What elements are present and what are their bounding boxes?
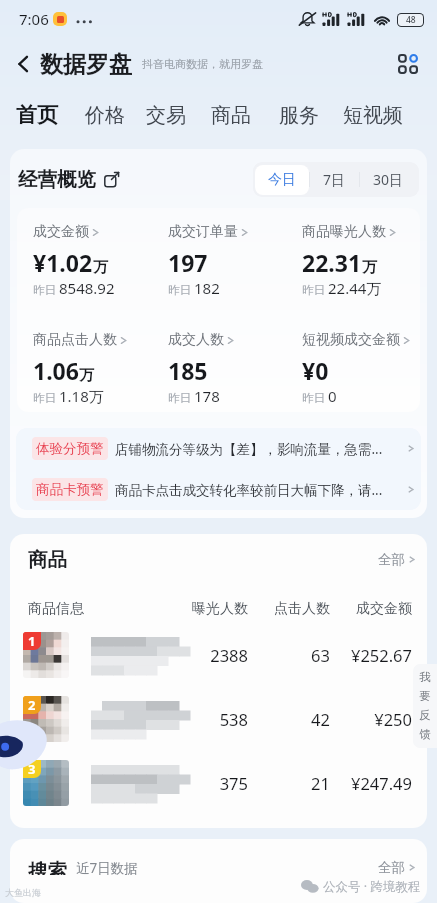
staticText: 交易 xyxy=(146,103,186,128)
staticText: 8548.92 xyxy=(59,278,115,298)
button[interactable]: 交易 xyxy=(146,103,186,136)
staticText: 大鱼出海 xyxy=(5,887,41,898)
button[interactable]: 7日 xyxy=(310,164,359,195)
staticText: 万 xyxy=(79,366,94,385)
button[interactable]: 服务 xyxy=(279,103,319,136)
staticText: ¥247.49 xyxy=(330,772,412,794)
staticText: 成交金额 xyxy=(33,223,89,241)
staticText: ¥252.67 xyxy=(330,644,412,666)
button[interactable]: 30日 xyxy=(360,164,417,195)
button[interactable]: 我 要 反 馈 xyxy=(413,664,437,748)
staticText: 63 xyxy=(248,644,330,666)
staticText: 3 xyxy=(28,760,36,778)
button[interactable]: 体验分预警 xyxy=(16,428,421,469)
staticText: 1 xyxy=(28,632,36,650)
button[interactable]: 全部 xyxy=(378,859,415,875)
button[interactable]: 商品点击人数 xyxy=(17,331,152,406)
staticText: 21 xyxy=(248,772,330,794)
staticText: 成交人数 xyxy=(168,331,224,349)
staticText: 7日 xyxy=(323,170,346,189)
staticText: 商品卡预警 xyxy=(36,481,104,498)
staticText: 万 xyxy=(93,258,108,277)
staticText: 体验分预警 xyxy=(36,440,104,457)
staticText: 数据罗盘 xyxy=(40,50,132,79)
staticText: 538 xyxy=(186,708,248,730)
staticText: 197 xyxy=(168,247,208,278)
staticText: 近7日数据 xyxy=(76,859,138,875)
button[interactable]: 2 xyxy=(10,687,427,751)
staticText: 昨日 xyxy=(33,391,56,405)
staticText: 首页 xyxy=(16,102,58,128)
button[interactable]: 价格 xyxy=(85,103,125,136)
staticText: 1.06 xyxy=(33,355,79,386)
staticText: 我 要 反 馈 xyxy=(419,670,431,742)
staticText: 2388 xyxy=(186,644,248,666)
staticText: 22.31 xyxy=(302,247,362,278)
staticText: 万 xyxy=(362,258,377,277)
staticText: 今日 xyxy=(268,171,296,189)
staticText: 375 xyxy=(186,772,248,794)
staticText: 全部 xyxy=(378,551,405,568)
staticText: 185 xyxy=(168,355,208,386)
staticText: 点击人数 xyxy=(248,600,330,618)
staticText: 成交订单量 xyxy=(168,223,238,241)
staticText: 178 xyxy=(194,386,220,406)
staticText: 成交金额 xyxy=(330,600,412,618)
staticText: 30日 xyxy=(373,170,404,189)
staticText: 公众号 · 跨境教程 xyxy=(323,878,421,895)
staticText: 182 xyxy=(194,278,220,298)
staticText: 商品点击人数 xyxy=(33,331,117,349)
staticText: 昨日 xyxy=(302,283,325,297)
button[interactable]: 成交订单量 xyxy=(152,223,286,298)
button[interactable]: 成交金额 xyxy=(17,223,152,298)
staticText: 曝光人数 xyxy=(186,600,248,618)
staticText: 抖音电商数据，就用罗盘 xyxy=(142,57,263,71)
staticText: 店铺物流分等级为【差】，影响流量，急需... xyxy=(115,440,408,458)
staticText: 昨日 xyxy=(33,283,56,297)
button[interactable]: 商品 xyxy=(211,103,251,136)
button[interactable]: 短视频 xyxy=(343,103,403,136)
staticText: 经营概览 xyxy=(18,167,96,192)
staticText: 商品信息 xyxy=(28,600,186,618)
staticText: 服务 xyxy=(279,103,319,128)
staticText: 搜索 xyxy=(28,859,67,875)
staticText: 昨日 xyxy=(302,391,325,405)
staticText: ¥1.02 xyxy=(33,247,93,278)
button[interactable]: 全部 xyxy=(378,551,415,568)
button[interactable]: 商品卡预警 xyxy=(16,469,421,510)
staticText: 价格 xyxy=(85,103,125,128)
staticText: 短视频成交金额 xyxy=(302,331,400,349)
button[interactable]: 成交人数 xyxy=(152,331,286,406)
staticText: 商品卡点击成交转化率较前日大幅下降，请... xyxy=(115,481,408,499)
button[interactable]: 1 xyxy=(10,623,427,687)
button[interactable]: 首页 xyxy=(16,102,58,136)
staticText: 22.44万 xyxy=(328,278,382,298)
button[interactable]: 3 xyxy=(10,751,427,815)
button[interactable]: 短视频成交金额 xyxy=(286,331,420,406)
staticText: 1.18万 xyxy=(59,386,104,406)
staticText: ¥0 xyxy=(302,355,329,386)
staticText: 全部 xyxy=(378,859,405,875)
button[interactable]: 商品曝光人数 xyxy=(286,223,420,298)
staticText: 商品 xyxy=(28,547,67,572)
button[interactable]: Apps xyxy=(392,48,424,80)
button[interactable]: Back xyxy=(8,49,38,79)
button[interactable]: Edit xyxy=(103,171,120,188)
staticText: ¥250 xyxy=(330,708,412,730)
staticText: 昨日 xyxy=(168,391,191,405)
staticText: 48 xyxy=(406,14,416,26)
staticText: 商品曝光人数 xyxy=(302,223,386,241)
staticText: 昨日 xyxy=(168,283,191,297)
staticText: 2 xyxy=(28,696,36,714)
button[interactable]: 今日 xyxy=(255,165,309,195)
staticText: 42 xyxy=(248,708,330,730)
staticText: 短视频 xyxy=(343,103,403,128)
staticText: 商品 xyxy=(211,103,251,128)
staticText: 0 xyxy=(328,386,337,406)
staticText: 7:06 xyxy=(19,9,49,29)
